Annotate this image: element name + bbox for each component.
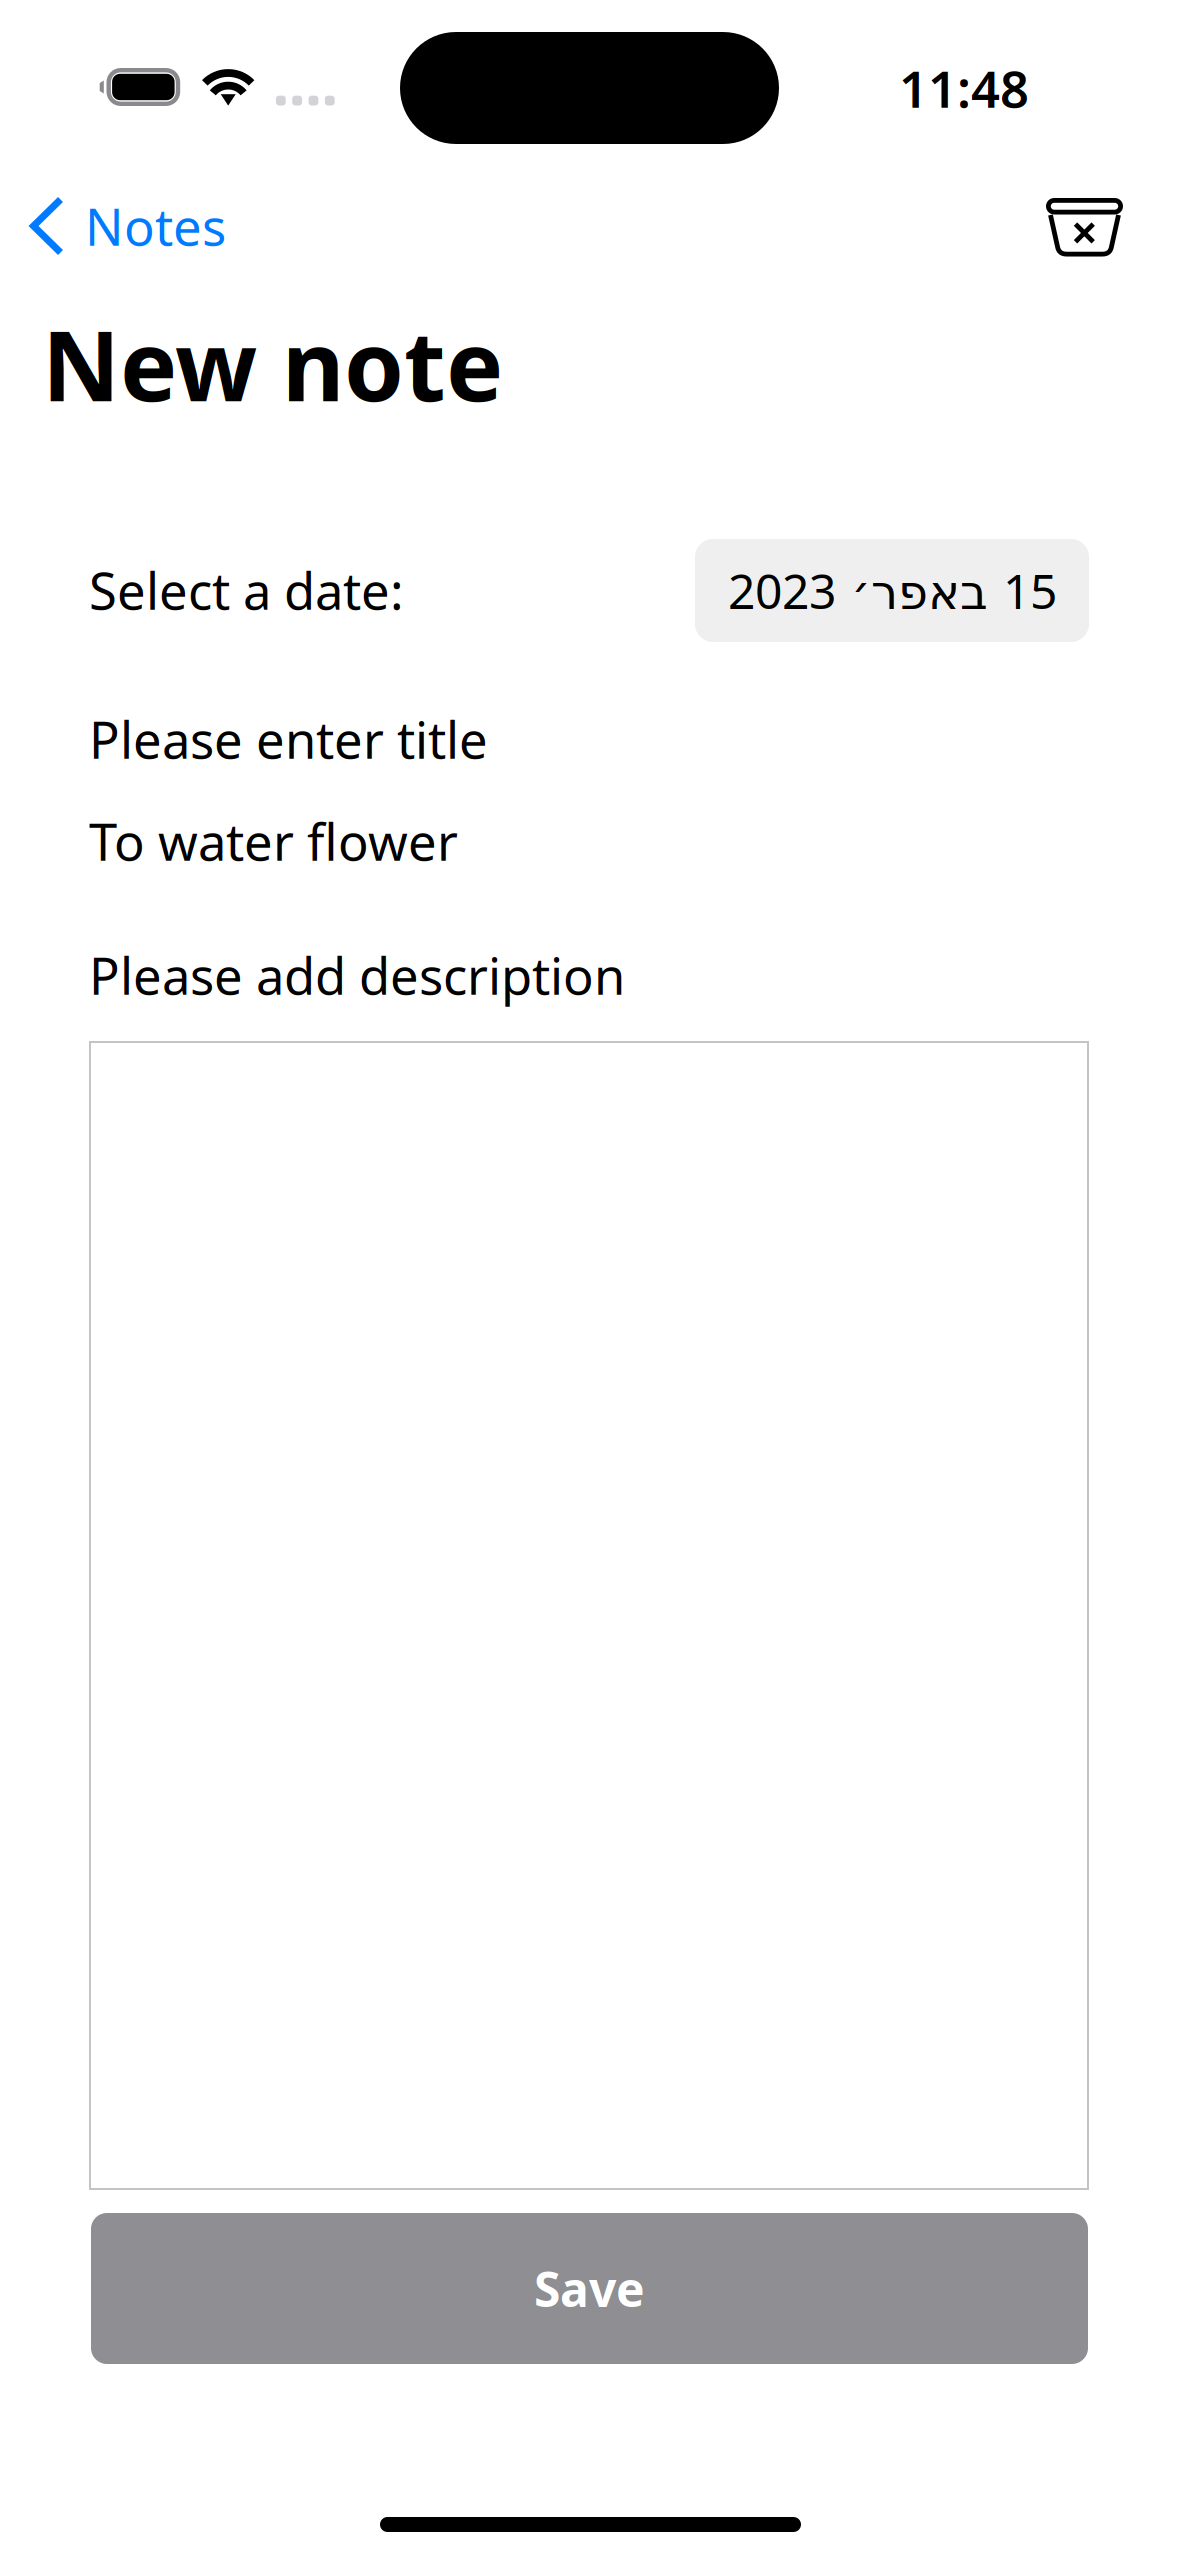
staticText: Please add description bbox=[89, 941, 625, 1009]
staticText: Save bbox=[534, 2257, 645, 2320]
button[interactable]: Save bbox=[91, 2213, 1088, 2364]
button[interactable]: Delete note bbox=[1024, 176, 1144, 264]
staticText: 15 באפר׳ 2023 bbox=[727, 559, 1056, 622]
button[interactable]: Notes bbox=[20, 182, 250, 270]
staticText: New note bbox=[42, 300, 503, 428]
staticText: 11:48 bbox=[899, 54, 1029, 122]
staticText: Notes bbox=[85, 192, 226, 260]
staticText: Please enter title bbox=[89, 705, 488, 773]
staticText: To water flower bbox=[89, 807, 458, 875]
staticText: Select a date: bbox=[89, 556, 404, 624]
button[interactable]: 15 באפר׳ 2023 bbox=[695, 539, 1089, 642]
